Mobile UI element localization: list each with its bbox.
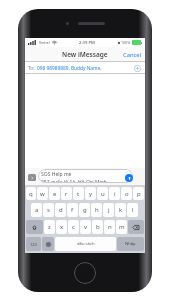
staticText: Cancel xyxy=(123,51,142,59)
button[interactable]: z xyxy=(44,220,55,234)
button[interactable]: j xyxy=(103,203,114,217)
button[interactable]: SOS Help me xyxy=(38,169,133,183)
staticText: m xyxy=(119,223,125,231)
staticText: 2:39 PM xyxy=(79,40,95,46)
button[interactable]: Cancel xyxy=(120,48,145,62)
button[interactable]: t xyxy=(73,187,84,200)
staticText: New iMessage xyxy=(62,50,108,59)
button[interactable]: e xyxy=(49,187,60,200)
button[interactable]: o xyxy=(121,187,132,200)
button[interactable]: Numbers xyxy=(26,237,41,251)
staticText: t xyxy=(77,190,80,198)
button[interactable]: x xyxy=(56,220,67,234)
button[interactable]: Delete xyxy=(128,220,144,234)
staticText: q xyxy=(29,190,33,198)
button[interactable]: i xyxy=(109,187,120,200)
staticText: SOS Help me xyxy=(41,171,72,178)
staticText: p xyxy=(137,190,141,198)
button[interactable]: p xyxy=(133,187,144,200)
button[interactable]: s xyxy=(43,203,54,217)
button[interactable]: a xyxy=(31,203,42,217)
button[interactable]: App drawer xyxy=(28,174,36,181)
staticText: x xyxy=(60,223,64,231)
staticText: To: xyxy=(28,65,35,72)
staticText: c xyxy=(72,223,75,231)
button[interactable]: q xyxy=(26,187,36,200)
staticText: d xyxy=(59,206,63,214)
staticText: v xyxy=(84,223,88,231)
staticText: a xyxy=(35,206,39,214)
button[interactable]: Add contact xyxy=(133,64,142,73)
button[interactable]: c xyxy=(68,220,79,234)
staticText: b xyxy=(96,223,100,231)
button[interactable]: r xyxy=(61,187,72,200)
staticText: k xyxy=(119,206,123,214)
button[interactable]: l xyxy=(127,203,138,217)
staticText: 100% xyxy=(121,40,131,45)
staticText: Viettel xyxy=(39,40,50,45)
staticText: l xyxy=(132,206,134,214)
button[interactable]: dấu cách xyxy=(55,237,116,251)
button[interactable]: m xyxy=(116,220,127,234)
staticText: o xyxy=(125,190,129,198)
staticText: u xyxy=(101,190,105,198)
staticText: h xyxy=(95,206,99,214)
staticText: w xyxy=(40,190,45,198)
button[interactable]: d xyxy=(55,203,66,217)
staticText: 098 98989889, Buddy Name, xyxy=(37,65,102,72)
button[interactable]: b xyxy=(92,220,103,234)
button[interactable]: k xyxy=(115,203,126,217)
button[interactable]: Emoji xyxy=(42,237,54,251)
staticText: 123 xyxy=(30,242,37,247)
button[interactable]: n xyxy=(104,220,115,234)
staticText: s xyxy=(47,206,50,214)
staticText: z xyxy=(48,223,51,231)
staticText: j xyxy=(108,206,110,214)
button[interactable]: h xyxy=(91,203,102,217)
button[interactable]: y xyxy=(85,187,96,200)
staticText: r xyxy=(65,190,68,198)
staticText: n xyxy=(108,223,112,231)
staticText: e xyxy=(53,190,57,198)
staticText: i xyxy=(114,190,116,198)
button[interactable]: w xyxy=(37,187,48,200)
staticText: Nhập xyxy=(125,241,136,247)
button[interactable]: v xyxy=(80,220,91,234)
button[interactable]: Nhập xyxy=(117,237,144,251)
staticText: 257 quốc lộ 1A, Hồ Chí Minh xyxy=(41,179,107,183)
button[interactable]: Shift xyxy=(26,220,43,234)
staticText: dấu cách xyxy=(77,241,95,247)
button[interactable]: u xyxy=(97,187,108,200)
button[interactable]: g xyxy=(79,203,90,217)
button[interactable]: f xyxy=(67,203,78,217)
button[interactable]: Send xyxy=(125,174,133,182)
staticText: y xyxy=(89,190,93,198)
staticText: g xyxy=(83,206,87,214)
staticText: f xyxy=(71,206,74,214)
